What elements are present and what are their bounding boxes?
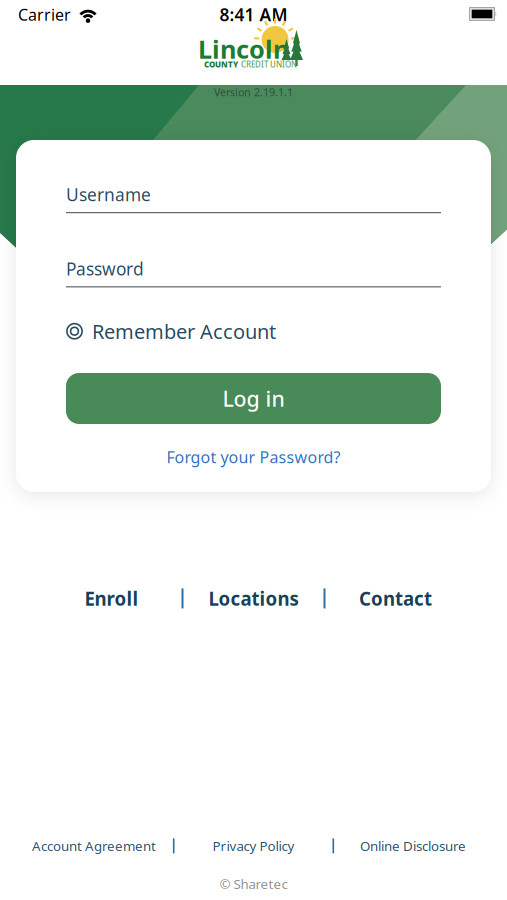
button[interactable]: Log in: [66, 373, 441, 424]
button[interactable]: Remember Account: [66, 318, 441, 344]
button[interactable]: Locations: [183, 586, 323, 611]
staticText: COUNTY: [204, 59, 238, 70]
staticText: Version 2.19.1.1: [214, 85, 293, 99]
staticText: Online Disclosure: [360, 837, 466, 855]
staticText: 8:41 AM: [219, 3, 287, 26]
staticText: Password: [66, 257, 144, 280]
button[interactable]: Username: [66, 183, 441, 213]
button[interactable]: Enroll: [41, 586, 181, 611]
staticText: Forgot your Password?: [166, 446, 340, 468]
staticText: Username: [66, 183, 151, 206]
button[interactable]: Online Disclosure: [334, 837, 492, 855]
button[interactable]: Account Agreement: [15, 837, 173, 855]
staticText: Privacy Policy: [212, 837, 294, 855]
button[interactable]: Forgot your Password?: [66, 446, 441, 468]
button[interactable]: Privacy Policy: [174, 837, 332, 855]
staticText: © Sharetec: [219, 875, 287, 893]
staticText: Lincoln: [198, 32, 289, 66]
staticText: Log in: [222, 384, 284, 413]
staticText: CREDIT UNION: [241, 59, 297, 70]
staticText: Account Agreement: [32, 837, 156, 855]
staticText: Contact: [359, 586, 432, 611]
staticText: Carrier: [18, 4, 71, 25]
button[interactable]: Contact: [325, 586, 465, 611]
staticText: Enroll: [84, 586, 138, 611]
staticText: Locations: [208, 586, 298, 611]
staticText: Remember Account: [92, 318, 276, 344]
button[interactable]: Password: [66, 257, 441, 287]
